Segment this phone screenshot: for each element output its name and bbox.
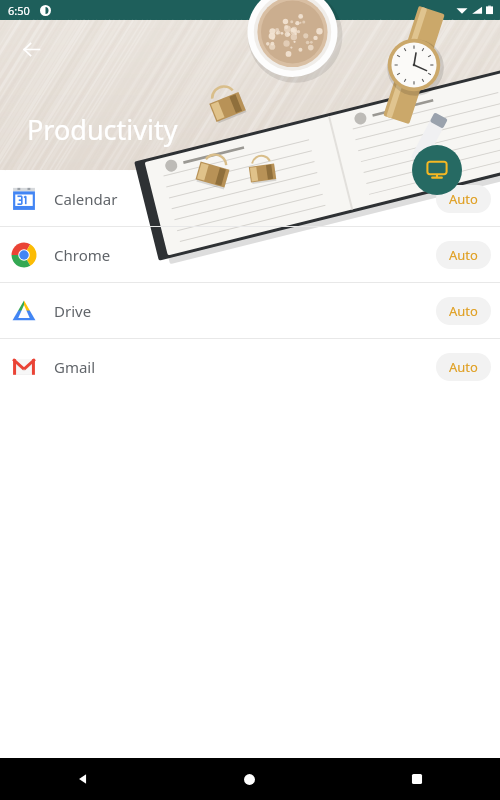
button[interactable]: Gmail bbox=[0, 339, 500, 394]
staticText: Drive bbox=[54, 301, 92, 321]
staticText: Auto bbox=[449, 190, 478, 208]
staticText: Auto bbox=[449, 358, 478, 376]
staticText: Gmail bbox=[54, 357, 96, 377]
staticText: Chrome bbox=[54, 245, 111, 265]
button[interactable]: Cast to device bbox=[412, 145, 462, 195]
button[interactable]: Drive bbox=[0, 283, 500, 338]
staticText: 6:50 bbox=[8, 3, 30, 18]
button[interactable]: Chrome bbox=[0, 227, 500, 282]
staticText: Auto bbox=[449, 246, 478, 264]
staticText: Productivity bbox=[27, 111, 178, 148]
button[interactable]: Auto bbox=[436, 353, 491, 381]
button[interactable]: Recent apps bbox=[333, 758, 500, 800]
staticText: Auto bbox=[449, 302, 478, 320]
button[interactable]: Auto bbox=[436, 297, 491, 325]
button[interactable]: Back bbox=[12, 30, 50, 68]
button[interactable]: Back bbox=[0, 758, 166, 800]
staticText: Calendar bbox=[54, 189, 118, 209]
button[interactable]: Calendar bbox=[0, 171, 500, 226]
button[interactable]: Home bbox=[166, 758, 333, 800]
button[interactable]: Auto bbox=[436, 241, 491, 269]
button[interactable]: Auto bbox=[436, 185, 491, 213]
